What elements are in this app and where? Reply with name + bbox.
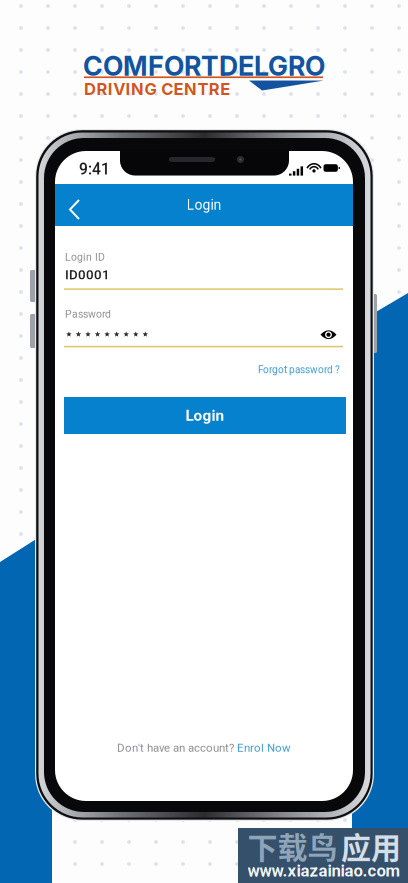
button[interactable]: Forgot password ? xyxy=(252,359,346,381)
button[interactable]: Login xyxy=(64,397,346,434)
staticText: Login ID xyxy=(65,251,105,263)
staticText: 下载鸟 xyxy=(247,824,337,867)
button[interactable]: Enrol Now xyxy=(237,741,291,754)
button[interactable]: Back xyxy=(59,189,91,230)
staticText: Don't have an account? xyxy=(117,741,234,754)
staticText: Login xyxy=(186,197,221,213)
staticText: Login xyxy=(185,406,224,424)
staticText: COMFORTDELGRO xyxy=(83,50,325,82)
button[interactable]: Show password xyxy=(312,321,344,348)
staticText: www.xiazainiao.com xyxy=(247,861,400,881)
staticText: Forgot password ? xyxy=(258,364,340,376)
staticText: Password xyxy=(65,308,111,320)
staticText: DRIVING CENTRE xyxy=(84,79,230,99)
staticText: Enrol Now xyxy=(237,741,291,754)
staticText: 应用 xyxy=(341,824,401,867)
staticText: ID0001 xyxy=(65,267,110,283)
staticText: 9:41 xyxy=(79,160,110,178)
